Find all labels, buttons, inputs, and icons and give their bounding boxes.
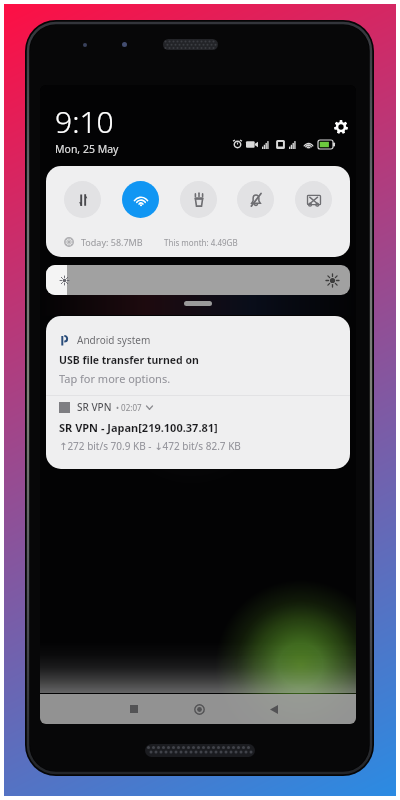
- button[interactable]: Settings: [331, 117, 351, 137]
- staticText: SR VPN: [77, 400, 112, 414]
- staticText: 9:10: [55, 101, 114, 142]
- staticText: Today: 58.7MB: [81, 236, 143, 248]
- button[interactable]: SR VPN: [46, 396, 350, 469]
- button[interactable]: Wi-Fi: [122, 181, 159, 218]
- staticText: This month: 4.49GB: [164, 237, 238, 248]
- button[interactable]: Mobile data: [64, 181, 101, 218]
- button[interactable]: Home: [186, 696, 212, 722]
- button[interactable]: Back: [261, 696, 287, 722]
- button[interactable]: Screenshot: [295, 181, 332, 218]
- button[interactable]: Android system: [46, 316, 350, 395]
- button[interactable]: Brightness: [46, 265, 350, 295]
- staticText: Tap for more options.: [59, 371, 171, 386]
- staticText: Mon, 25 May: [55, 142, 119, 156]
- button[interactable]: Flashlight: [180, 181, 217, 218]
- button[interactable]: Recents: [121, 696, 147, 722]
- staticText: ↑272 bit/s 70.9 KB - ↓472 bit/s 82.7 KB: [59, 439, 241, 453]
- staticText: Android system: [77, 333, 151, 347]
- staticText: SR VPN - Japan[219.100.37.81]: [59, 420, 218, 435]
- staticText: USB file transfer turned on: [59, 353, 199, 367]
- staticText: • 02:07: [116, 402, 142, 413]
- button[interactable]: Mute: [237, 181, 274, 218]
